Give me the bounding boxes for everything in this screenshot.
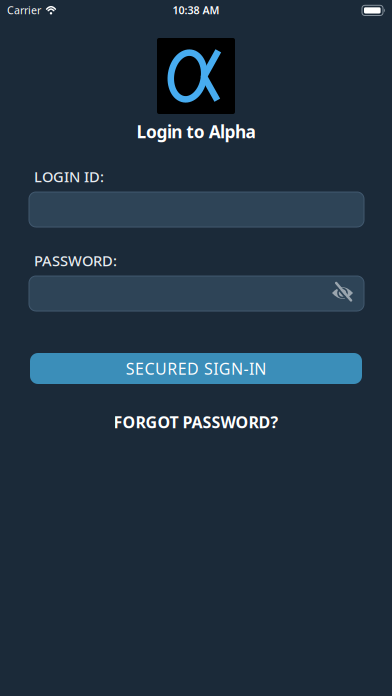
staticText: SECURED SIGN-IN	[126, 358, 266, 379]
staticText: 10:38 AM	[172, 3, 219, 17]
staticText: FORGOT PASSWORD?	[113, 411, 278, 433]
button[interactable]	[29, 192, 364, 227]
button[interactable]	[29, 276, 364, 311]
staticText: Carrier	[7, 3, 41, 17]
button[interactable]	[331, 282, 353, 303]
staticText: LOGIN ID:	[34, 167, 104, 186]
button[interactable]: FORGOT PASSWORD?	[113, 411, 278, 433]
button[interactable]: SECURED SIGN-IN	[30, 353, 362, 384]
staticText: PASSWORD:	[34, 251, 117, 270]
staticText: Login to Alpha	[137, 120, 255, 143]
